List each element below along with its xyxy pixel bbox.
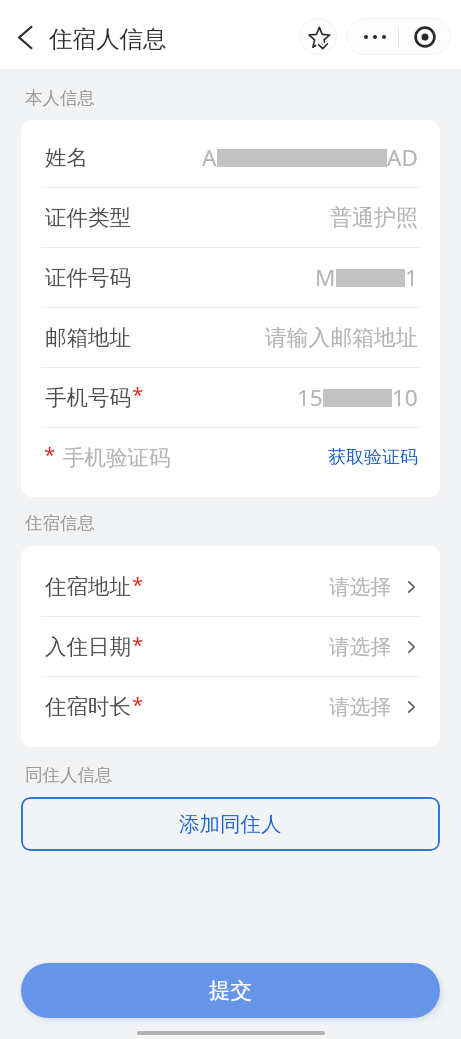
staticText: 请选择 [329,694,392,720]
staticText: 15 [297,382,323,413]
staticText: 证件号码 [45,264,131,291]
staticText: 请选择 [329,634,392,660]
staticText: 住宿信息 [25,512,95,534]
button[interactable]: 邮箱地址 [45,308,418,367]
staticText: A [202,142,217,173]
staticText: 提交 [209,977,252,1004]
button[interactable]: 提交 [21,963,440,1018]
staticText: 请选择 [329,574,392,600]
staticText: 手机号码 [45,384,131,411]
staticText: 普通护照 [330,204,418,232]
staticText: * [44,440,56,468]
staticText: 获取验证码 [328,446,418,469]
staticText: M [315,262,336,293]
staticText: 证件类型 [45,204,131,231]
staticText: 同住人信息 [25,764,113,786]
staticText: 本人信息 [25,87,95,109]
staticText: 1 [405,262,418,293]
staticText: * [132,570,144,598]
button[interactable]: 证件类型 [45,188,418,247]
button[interactable]: * [44,428,418,487]
button[interactable]: Close mini program [399,18,451,55]
button[interactable]: Back [9,22,40,53]
staticText: 邮箱地址 [45,324,131,351]
button[interactable]: 姓名 [45,128,418,187]
staticText: * [132,380,144,408]
button[interactable]: 住宿时长 [45,677,415,736]
button[interactable]: 手机号码 [45,368,418,427]
staticText: 住宿人信息 [49,24,167,54]
button[interactable]: 入住日期 [45,617,415,676]
staticText: AD [387,142,418,173]
button[interactable]: More options [346,18,398,55]
staticText: 10 [392,382,418,413]
button[interactable]: 住宿地址 [45,557,415,616]
staticText: 添加同住人 [179,811,282,837]
staticText: 姓名 [45,144,88,171]
button[interactable]: 添加同住人 [21,797,440,851]
staticText: * [132,630,144,658]
staticText: * [132,690,144,718]
staticText: 住宿地址 [45,573,131,600]
button[interactable]: Favorite [299,18,337,55]
staticText: 手机验证码 [63,444,171,471]
button[interactable]: 证件号码 [45,248,418,307]
staticText: 住宿时长 [45,693,131,720]
staticText: 请输入邮箱地址 [265,324,418,351]
staticText: 入住日期 [45,633,131,660]
